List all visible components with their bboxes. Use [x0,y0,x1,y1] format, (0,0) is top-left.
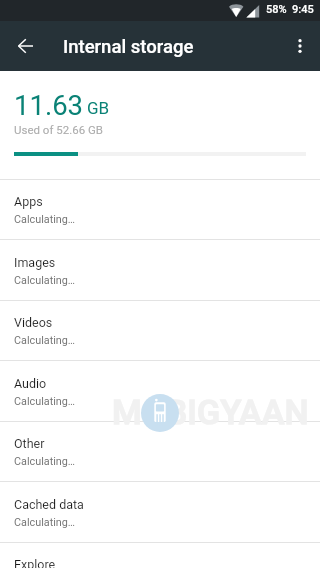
staticText: Internal storage [63,36,194,58]
button[interactable]: Videos [0,300,320,361]
button[interactable]: Explore [0,542,320,568]
staticText: 11.63 [14,89,84,121]
staticText: Explore [14,557,56,568]
staticText: Other [14,436,45,451]
button[interactable]: Back [9,30,41,62]
staticText: GB [87,98,110,118]
staticText: 9:45 [292,3,314,16]
staticText: Calculating… [14,274,76,287]
staticText: Used of 52.66 GB [14,123,103,136]
staticText: Calculating… [14,213,76,226]
staticText: Calculating… [14,516,76,529]
staticText: Calculating… [14,334,76,347]
staticText: Videos [14,315,53,330]
button[interactable]: Other [0,421,320,482]
button[interactable]: Audio [0,361,320,422]
button[interactable]: Images [0,240,320,301]
staticText: Images [14,255,56,270]
staticText: Apps [14,194,43,209]
button[interactable]: Apps [0,179,320,240]
staticText: MOBIGYAAN [112,392,309,432]
staticText: Audio [14,376,47,391]
button[interactable]: More options [284,30,316,62]
staticText: 58% [266,3,287,16]
staticText: Calculating… [14,455,76,468]
staticText: Cached data [14,497,84,512]
button[interactable]: Cached data [0,482,320,543]
staticText: Calculating… [14,395,76,408]
